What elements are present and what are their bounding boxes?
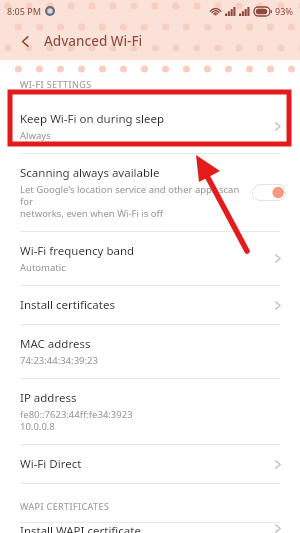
button[interactable]: Scanning always available (0, 154, 300, 231)
staticText: Advanced Wi-Fi (44, 32, 143, 50)
staticText: Install certificates (20, 297, 115, 313)
staticText: 8:05 PM (7, 5, 41, 17)
staticText: Scanning always available (20, 165, 160, 181)
button[interactable]: Wi-Fi Direct (0, 445, 300, 483)
staticText: 74:23:44:34:39:23 (20, 354, 98, 367)
button[interactable]: MAC address (0, 325, 300, 378)
staticText: Wi-Fi Direct (20, 456, 82, 472)
staticText: Always (20, 129, 51, 142)
staticText: Automatic (20, 261, 66, 274)
button[interactable]: IP address (0, 379, 300, 444)
staticText: WI-FI SETTINGS (20, 78, 92, 90)
button[interactable]: Scanning always available toggle (252, 184, 286, 201)
staticText: 93% (275, 5, 293, 17)
button[interactable]: Keep Wi-Fi on during sleep (0, 100, 300, 153)
button[interactable]: Wi-Fi frequency band (0, 232, 300, 285)
staticText: MAC address (20, 336, 91, 352)
staticText: Install WAPI certificate (20, 523, 141, 533)
button[interactable]: Back (12, 28, 38, 54)
button[interactable]: Install certificates (0, 286, 300, 324)
staticText: Keep Wi-Fi on during sleep (20, 111, 165, 127)
staticText: Wi-Fi frequency band (20, 243, 135, 259)
staticText: IP address (20, 390, 77, 406)
button[interactable]: Install WAPI certificate (0, 523, 300, 533)
staticText: WAPI CERTIFICATES (20, 500, 110, 512)
staticText: Let Google's location service and other … (20, 183, 244, 220)
staticText: fe80::7623:44ff:fe34:3923 10.0.0.8 (20, 408, 133, 433)
